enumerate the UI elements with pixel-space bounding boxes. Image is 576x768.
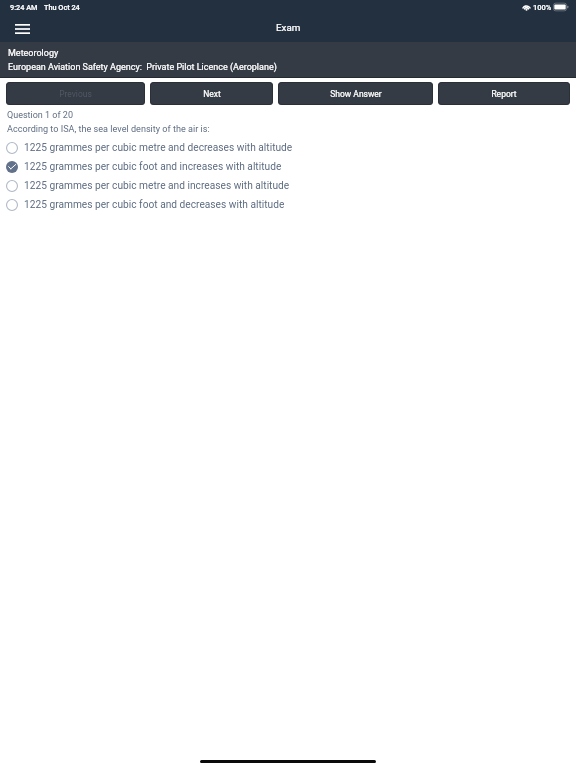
staticText: 9:24 AM — [10, 3, 38, 12]
button[interactable]: Previous — [6, 82, 145, 105]
staticText: 100% — [533, 3, 552, 12]
staticText: 1225 grammes per cubic foot and decrease… — [24, 199, 285, 211]
staticText: Exam — [276, 22, 301, 33]
button[interactable]: 1225 grammes per cubic foot and decrease… — [0, 195, 576, 214]
staticText: Report — [491, 89, 517, 99]
staticText: Meteorology — [8, 48, 59, 59]
staticText: Question 1 of 20 — [7, 110, 73, 121]
staticText: 1225 grammes per cubic foot and increase… — [24, 161, 282, 173]
staticText: 1225 grammes per cubic metre and decreas… — [24, 142, 293, 154]
staticText: Next — [203, 89, 221, 99]
staticText: Previous — [59, 89, 92, 99]
button[interactable]: 1225 grammes per cubic metre and decreas… — [0, 138, 576, 157]
button[interactable]: 1225 grammes per cubic metre and increas… — [0, 176, 576, 195]
staticText: Thu Oct 24 — [44, 3, 80, 12]
button[interactable]: 1225 grammes per cubic foot and increase… — [0, 157, 576, 176]
staticText: According to ISA, the sea level density … — [7, 124, 210, 135]
staticText: Show Answer — [330, 89, 382, 99]
button[interactable]: Report — [438, 82, 570, 105]
button[interactable]: Next — [150, 82, 273, 105]
button[interactable]: Show Answer — [278, 82, 433, 105]
staticText: European Aviation Safety Agency: Private… — [8, 62, 277, 73]
staticText: 1225 grammes per cubic metre and increas… — [24, 180, 290, 192]
button[interactable]: Menu — [7, 15, 37, 42]
